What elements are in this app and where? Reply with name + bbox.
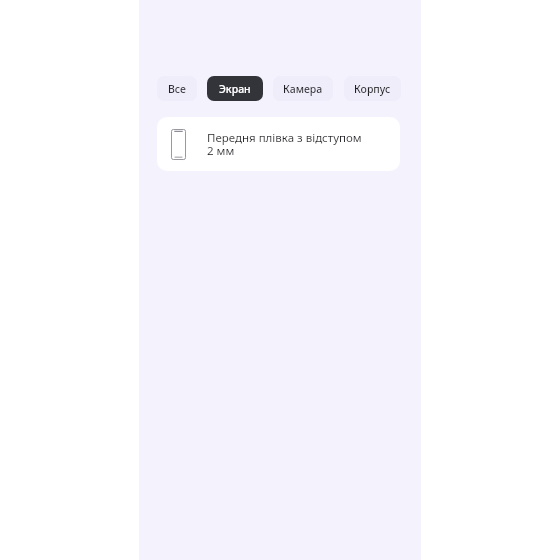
button[interactable]: Все bbox=[157, 76, 197, 101]
other: Screen protector bbox=[171, 129, 186, 160]
staticText: Передня плівка з відступом 2 мм bbox=[207, 130, 362, 159]
button[interactable]: Screen protector bbox=[157, 117, 400, 171]
staticText: Камера bbox=[283, 82, 323, 96]
staticText: Экран bbox=[219, 82, 251, 96]
staticText: Все bbox=[168, 82, 186, 96]
staticText: Корпус bbox=[354, 82, 391, 96]
button[interactable]: Экран bbox=[207, 76, 263, 101]
button[interactable]: Корпус bbox=[344, 76, 401, 101]
button[interactable]: Камера bbox=[273, 76, 333, 101]
